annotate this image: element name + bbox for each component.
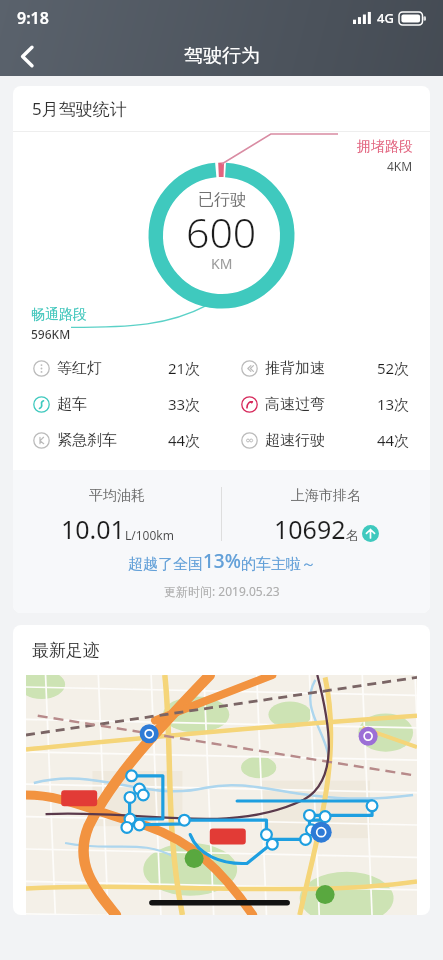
staticText: 已行驶 — [198, 190, 246, 210]
staticText: KM — [211, 254, 233, 273]
staticText: 21次 — [168, 358, 201, 378]
staticText: 13次 — [377, 394, 410, 414]
staticText: 44次 — [168, 430, 201, 450]
staticText: 5月驾驶统计 — [32, 97, 127, 120]
staticText: 畅通路段 — [31, 306, 87, 324]
button[interactable]: 推背加速 — [221, 350, 430, 386]
staticText: 超车 — [57, 395, 87, 414]
staticText: 的车主啦～ — [241, 555, 316, 574]
staticText: 拥堵路段 — [357, 138, 413, 156]
staticText: 10.01 — [61, 512, 125, 546]
staticText: 紧急刹车 — [57, 431, 117, 450]
staticText: 9:18 — [17, 7, 49, 29]
staticText: 推背加速 — [265, 359, 325, 378]
staticText: 4G — [377, 9, 394, 27]
staticText: 最新足迹 — [32, 640, 100, 661]
button[interactable]: 等红灯 — [13, 350, 221, 386]
staticText: 4KM — [387, 158, 413, 174]
staticText: 更新时间: 2019.05.23 — [164, 583, 280, 599]
staticText: 44次 — [377, 430, 410, 450]
button[interactable]: 超车 — [13, 386, 221, 422]
button[interactable]: Back — [4, 36, 50, 76]
staticText: 平均油耗 — [89, 487, 145, 505]
staticText: 上海市排名 — [291, 487, 361, 505]
staticText: 596KM — [31, 326, 71, 342]
staticText: 驾驶行为 — [184, 44, 260, 68]
staticText: 13% — [203, 548, 241, 574]
staticText: L/100km — [125, 527, 174, 543]
staticText: 10692 — [274, 512, 346, 546]
button[interactable]: Map of recent trips — [26, 675, 417, 915]
staticText: 52次 — [377, 358, 410, 378]
button[interactable]: 超速行驶 — [221, 422, 430, 458]
staticText: 等红灯 — [57, 359, 102, 378]
staticText: 600 — [186, 204, 257, 260]
staticText: 超速行驶 — [265, 431, 325, 450]
staticText: 名 — [346, 527, 359, 543]
button[interactable]: 紧急刹车 — [13, 422, 221, 458]
staticText: 33次 — [168, 394, 201, 414]
button[interactable]: 高速过弯 — [221, 386, 430, 422]
staticText: 高速过弯 — [265, 395, 325, 414]
staticText: 超越了全国 — [128, 555, 203, 574]
